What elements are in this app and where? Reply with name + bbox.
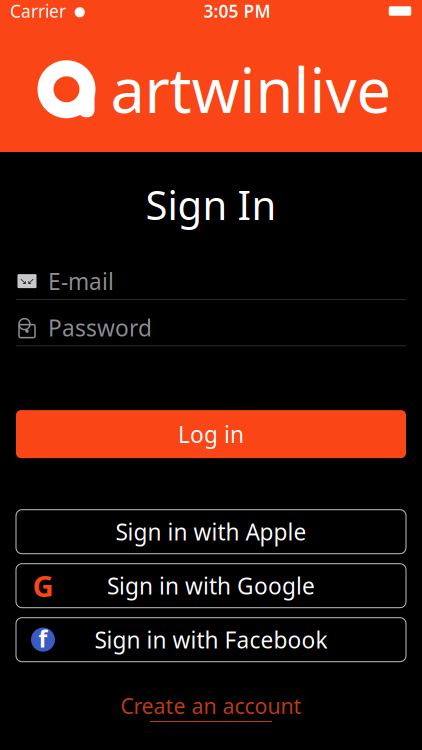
button[interactable]: f bbox=[16, 618, 406, 662]
staticText: 3:05 PM bbox=[203, 0, 270, 22]
staticText: artwinlive bbox=[110, 49, 391, 130]
staticText: Carrier bbox=[10, 0, 66, 22]
staticText: ↘↙ bbox=[19, 276, 35, 286]
button[interactable]: G bbox=[16, 564, 406, 608]
staticText: ● bbox=[74, 3, 86, 18]
staticText: G bbox=[32, 566, 53, 605]
staticText: E-mail bbox=[48, 266, 114, 296]
staticText: f bbox=[38, 624, 47, 654]
staticText: Sign In bbox=[145, 178, 276, 231]
staticText: Sign in with Apple bbox=[115, 517, 306, 547]
staticText: Sign in with Google bbox=[107, 571, 315, 601]
button[interactable]: Create an account bbox=[108, 684, 313, 730]
staticText: Password bbox=[48, 313, 152, 343]
button[interactable]: Sign in with Apple bbox=[16, 510, 406, 554]
staticText: Create an account bbox=[120, 692, 301, 720]
button[interactable]: Log in bbox=[16, 410, 406, 458]
staticText: Sign in with Facebook bbox=[94, 625, 327, 655]
staticText: Log in bbox=[178, 419, 244, 449]
